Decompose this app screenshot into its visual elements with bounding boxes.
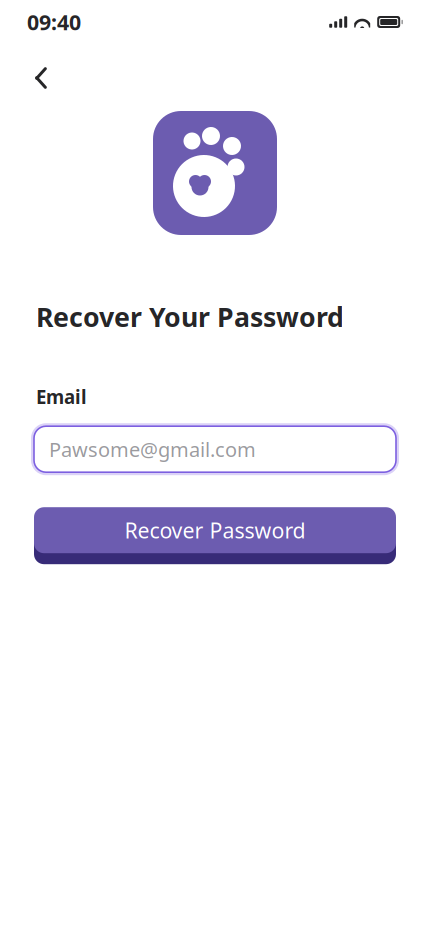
button[interactable]: Pawsome@gmail.com (31, 423, 399, 475)
staticText: Pawsome@gmail.com (49, 436, 256, 462)
staticText: Recover Password (124, 516, 305, 544)
staticText: 09:40 (27, 8, 81, 36)
button[interactable]: Recover Password (34, 507, 396, 564)
staticText: Email (36, 384, 87, 409)
button[interactable]: Back (19, 56, 63, 100)
staticText: Recover Your Password (36, 299, 344, 334)
